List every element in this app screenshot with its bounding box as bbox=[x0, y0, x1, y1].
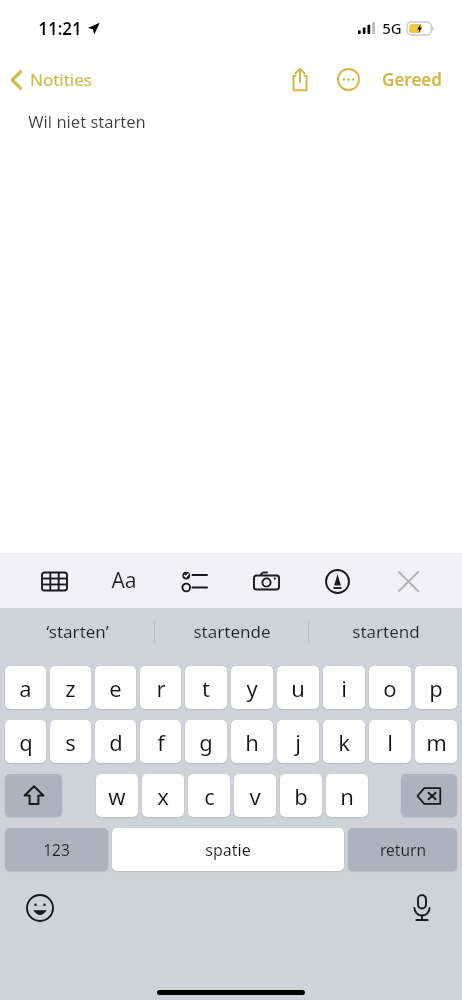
staticText: o bbox=[383, 673, 397, 703]
button[interactable]: Deel bbox=[278, 57, 322, 101]
button[interactable]: t bbox=[185, 666, 227, 709]
button[interactable]: s bbox=[50, 720, 91, 763]
button[interactable]: a bbox=[5, 666, 46, 709]
button[interactable]: Camera bbox=[246, 561, 286, 601]
button[interactable]: o bbox=[369, 666, 411, 709]
button[interactable]: return bbox=[348, 828, 457, 871]
staticText: v bbox=[249, 781, 261, 811]
button[interactable]: b bbox=[280, 774, 322, 817]
staticText: e bbox=[109, 673, 122, 703]
button[interactable]: d bbox=[95, 720, 136, 763]
button[interactable]: n bbox=[326, 774, 368, 817]
staticText: z bbox=[65, 673, 76, 703]
button[interactable]: y bbox=[231, 666, 273, 709]
button[interactable]: r bbox=[140, 666, 181, 709]
staticText: b bbox=[294, 781, 308, 811]
button[interactable]: Notities bbox=[0, 64, 102, 95]
button[interactable]: u bbox=[277, 666, 319, 709]
staticText: j bbox=[295, 727, 301, 757]
button[interactable]: Tabel bbox=[34, 561, 74, 601]
staticText: u bbox=[291, 673, 305, 703]
staticText: Wil niet starten bbox=[28, 110, 146, 132]
staticText: c bbox=[204, 781, 215, 811]
button[interactable]: i bbox=[323, 666, 365, 709]
button[interactable]: spatie bbox=[112, 828, 344, 871]
button[interactable]: k bbox=[323, 720, 365, 763]
button[interactable]: q bbox=[5, 720, 46, 763]
button[interactable]: ‘starten’ bbox=[0, 608, 154, 655]
staticText: m bbox=[426, 727, 447, 757]
staticText: 5G bbox=[382, 18, 402, 38]
staticText: 11:21 bbox=[38, 17, 82, 40]
staticText: spatie bbox=[205, 839, 251, 861]
button[interactable]: p bbox=[415, 666, 457, 709]
staticText: k bbox=[338, 727, 350, 757]
staticText: ‘starten’ bbox=[46, 620, 109, 643]
staticText: r bbox=[156, 673, 166, 703]
staticText: t bbox=[202, 673, 210, 703]
button[interactable]: Sluiten bbox=[388, 561, 428, 601]
button[interactable]: 123 bbox=[5, 828, 108, 871]
button[interactable]: j bbox=[277, 720, 319, 763]
staticText: s bbox=[65, 727, 76, 757]
button[interactable]: Shift bbox=[5, 774, 62, 817]
button[interactable]: v bbox=[234, 774, 276, 817]
button[interactable]: c bbox=[188, 774, 230, 817]
staticText: startend bbox=[352, 620, 420, 643]
button[interactable]: x bbox=[142, 774, 184, 817]
button[interactable]: Gereed bbox=[374, 62, 450, 97]
button[interactable]: f bbox=[140, 720, 181, 763]
button[interactable]: Meer bbox=[326, 57, 370, 101]
button[interactable]: Emoji bbox=[20, 888, 60, 928]
button[interactable]: Tekenen bbox=[317, 561, 357, 601]
staticText: n bbox=[340, 781, 354, 811]
button[interactable]: l bbox=[369, 720, 411, 763]
staticText: Aa bbox=[111, 566, 137, 595]
button[interactable]: Backspace bbox=[401, 774, 457, 817]
staticText: q bbox=[19, 727, 33, 757]
button[interactable]: startende bbox=[155, 608, 308, 655]
button[interactable]: g bbox=[185, 720, 227, 763]
staticText: i bbox=[341, 673, 347, 703]
staticText: return bbox=[380, 839, 426, 860]
staticText: g bbox=[199, 727, 213, 757]
staticText: Notities bbox=[30, 68, 92, 91]
button[interactable]: Dicteren bbox=[402, 888, 442, 928]
staticText: x bbox=[157, 781, 169, 811]
staticText: y bbox=[246, 673, 258, 703]
staticText: 123 bbox=[43, 839, 70, 860]
staticText: a bbox=[19, 673, 32, 703]
staticText: p bbox=[429, 673, 443, 703]
button[interactable]: m bbox=[415, 720, 457, 763]
staticText: l bbox=[387, 727, 393, 757]
button[interactable]: e bbox=[95, 666, 136, 709]
button[interactable]: h bbox=[231, 720, 273, 763]
staticText: h bbox=[245, 727, 259, 757]
button[interactable]: w bbox=[96, 774, 138, 817]
staticText: d bbox=[109, 727, 123, 757]
button[interactable]: Aa bbox=[105, 560, 143, 601]
staticText: f bbox=[157, 727, 165, 757]
staticText: Gereed bbox=[382, 68, 442, 91]
button[interactable]: Checklist bbox=[174, 561, 214, 601]
button[interactable]: startend bbox=[309, 608, 462, 655]
staticText: startende bbox=[193, 620, 271, 643]
staticText: w bbox=[108, 781, 126, 811]
button[interactable]: z bbox=[50, 666, 91, 709]
